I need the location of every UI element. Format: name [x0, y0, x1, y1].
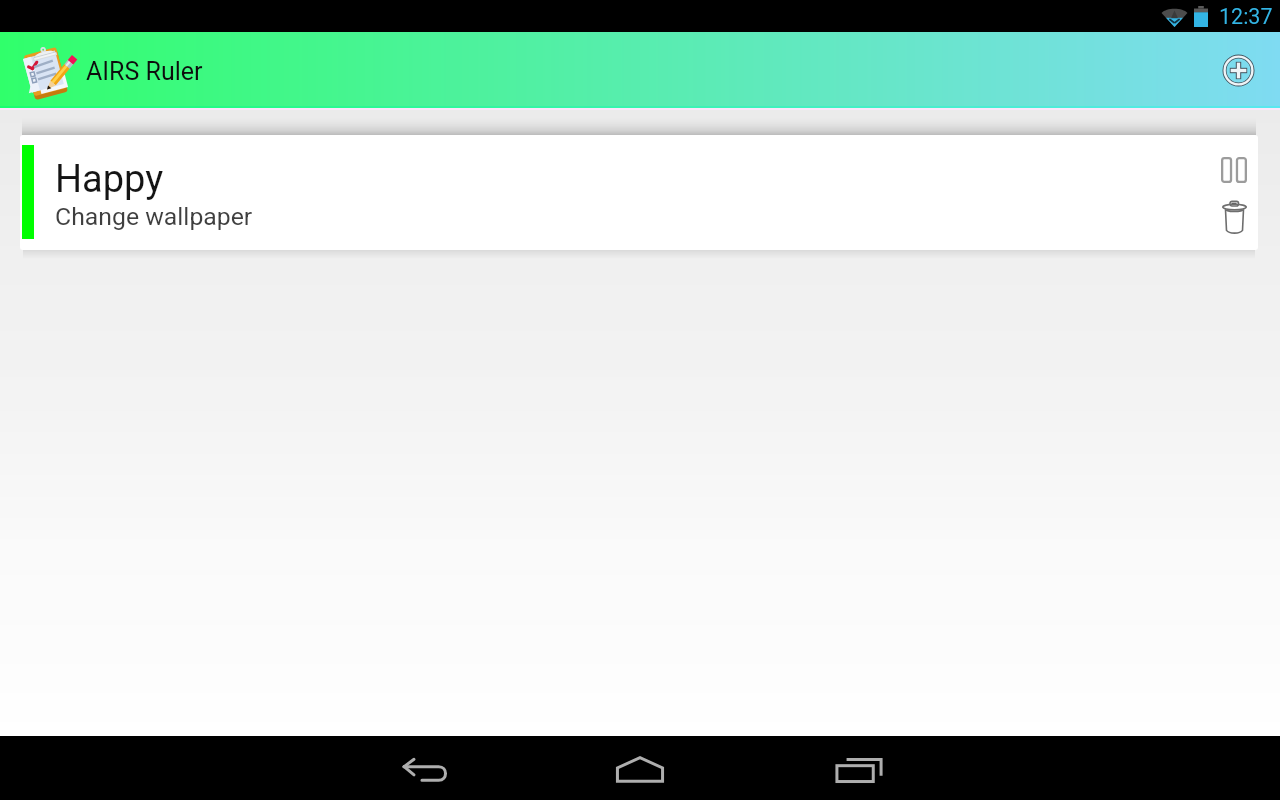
button[interactable]: Happy: [20, 135, 1258, 250]
button[interactable]: Pause: [1212, 148, 1256, 192]
button[interactable]: Delete: [1212, 195, 1256, 239]
button[interactable]: Recents: [831, 742, 887, 798]
staticText: Happy: [55, 157, 164, 202]
button[interactable]: Home: [612, 741, 668, 797]
button[interactable]: Back: [397, 742, 453, 798]
staticText: AIRS Ruler: [86, 57, 203, 86]
staticText: Change wallpaper: [55, 202, 253, 231]
button[interactable]: Add: [1216, 48, 1260, 92]
staticText: 12:37: [1219, 4, 1273, 29]
